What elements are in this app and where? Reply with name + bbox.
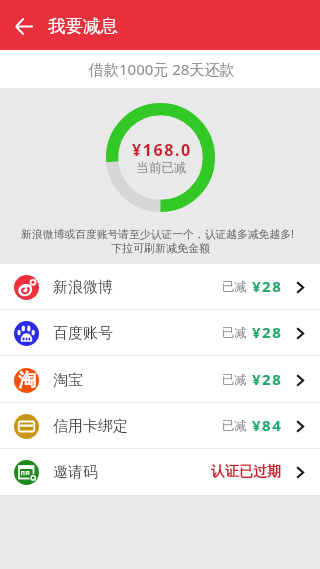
staticText: 信用卡绑定 xyxy=(53,417,128,436)
button[interactable]: 信用卡绑定 xyxy=(0,403,320,449)
button[interactable]: 新浪微博 xyxy=(0,264,320,310)
staticText: ¥28 xyxy=(252,322,283,342)
staticText: 淘 xyxy=(18,369,36,392)
staticText: ¥28 xyxy=(252,369,283,389)
staticText: ¥168.0 xyxy=(132,139,192,161)
staticText: 借款1000元 28天还款 xyxy=(89,59,235,79)
staticText: 我要减息 xyxy=(48,15,118,37)
staticText: 认证已过期 xyxy=(211,463,281,481)
staticText: ¥28 xyxy=(252,276,283,296)
staticText: 已减 xyxy=(222,372,247,388)
staticText: 已减 xyxy=(222,279,247,295)
staticText: 邀请码 xyxy=(53,463,98,482)
staticText: 当前已减 xyxy=(136,160,187,176)
staticText: 淘宝 xyxy=(53,371,83,390)
staticText: 百度账号 xyxy=(53,324,113,343)
staticText: 已减 xyxy=(222,418,247,434)
button[interactable]: 淘 xyxy=(0,357,320,403)
staticText: 已减 xyxy=(222,325,247,341)
button[interactable]: Back xyxy=(0,2,48,50)
staticText: 新浪微博 xyxy=(53,278,113,297)
staticText: 新浪微博或百度账号请至少认证一个，认证越多减免越多! xyxy=(21,226,294,241)
staticText: 下拉可刷新减免金额 xyxy=(111,241,210,255)
staticText: ¥84 xyxy=(252,415,283,435)
button[interactable]: 百度账号 xyxy=(0,310,320,356)
button[interactable]: 邀请码 xyxy=(0,449,320,495)
